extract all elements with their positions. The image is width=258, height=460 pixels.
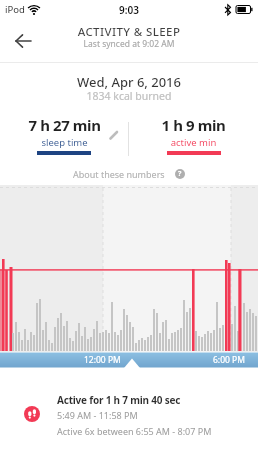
staticText: iPod — [5, 3, 25, 16]
staticText: 6:00 PM — [213, 354, 245, 366]
staticText: Wed, Apr 6, 2016 — [0, 73, 258, 91]
staticText: 1834 kcal burned — [0, 89, 258, 103]
staticText: Active for 1 h 7 min 40 sec — [57, 393, 181, 407]
staticText: 1 h 9 min — [129, 115, 258, 135]
button[interactable]: About these numbers — [0, 168, 258, 180]
staticText: sleep time — [0, 136, 129, 149]
button[interactable]: Active for 1 h 7 min 40 sec — [0, 384, 258, 444]
staticText: About these numbers — [73, 168, 165, 180]
button[interactable]: 7 h 27 min — [0, 112, 129, 132]
button[interactable]: 1 h 9 min — [129, 112, 258, 132]
staticText: 5:49 AM - 11:58 PM — [57, 409, 138, 421]
staticText: 7 h 27 min — [0, 115, 129, 135]
button[interactable] — [8, 26, 38, 56]
staticText: 9:03 — [0, 3, 258, 17]
staticText: Last synced at 9:02 AM — [0, 38, 258, 50]
staticText: active min — [129, 136, 258, 149]
staticText: ? — [178, 169, 182, 179]
staticText: ACTIVITY & SLEEP — [0, 24, 258, 40]
staticText: 12:00 PM — [84, 354, 121, 366]
staticText: Active 6x between 6:55 AM - 8:07 PM — [57, 425, 212, 437]
